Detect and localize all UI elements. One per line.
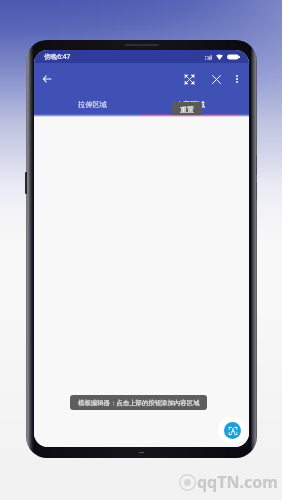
staticText: 重置: [180, 105, 194, 114]
button[interactable]: More options: [229, 71, 245, 87]
staticText: 傍晚6:47: [44, 52, 71, 61]
button[interactable]: Add content area: [224, 422, 241, 439]
button[interactable]: Back: [38, 70, 56, 88]
button[interactable]: Exit fullscreen: [180, 70, 198, 88]
button[interactable]: 拉伸区域: [44, 93, 141, 114]
button[interactable]: 内容区域: [141, 93, 239, 114]
button[interactable]: Close: [207, 70, 225, 88]
staticText: 拉伸区域: [78, 100, 107, 109]
staticText: 模板编辑器：点击上部的按钮添加内容区域: [78, 399, 200, 407]
staticText: qqTN.com: [197, 471, 278, 493]
staticText: 内容区域: [176, 100, 205, 109]
